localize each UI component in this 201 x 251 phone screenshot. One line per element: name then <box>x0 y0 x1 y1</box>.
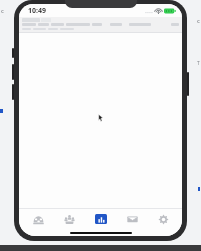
button[interactable]: Settings <box>151 209 175 229</box>
staticText: 10:49 <box>28 6 46 16</box>
button[interactable]: Reports <box>89 209 113 229</box>
staticText: c <box>1 7 4 15</box>
button[interactable]: Dashboard <box>26 209 50 229</box>
staticText: c <box>197 17 200 25</box>
staticText: T <box>197 60 200 67</box>
button[interactable]: Messages <box>120 209 144 229</box>
button[interactable]: Team <box>57 209 81 229</box>
